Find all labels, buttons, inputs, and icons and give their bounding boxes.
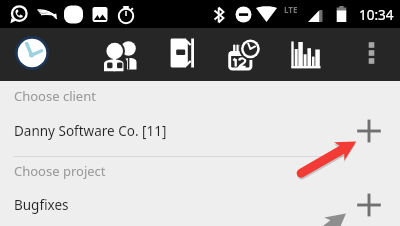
staticText: Bugfixes xyxy=(14,196,345,214)
button[interactable]: Timer xyxy=(11,32,53,74)
button[interactable]: Reports xyxy=(285,32,327,74)
button[interactable]: More options xyxy=(352,32,388,74)
staticText: Danny Software Co. [11] xyxy=(14,122,345,140)
button[interactable]: Bugfixes xyxy=(0,184,400,226)
button[interactable]: Add project xyxy=(345,184,393,226)
staticText: LTE xyxy=(284,4,298,15)
staticText: 10:34 xyxy=(359,6,394,24)
button[interactable]: Timesheet xyxy=(223,32,265,74)
button[interactable]: Add client xyxy=(345,109,393,153)
staticText: Choose client xyxy=(14,87,96,105)
button[interactable]: Projects xyxy=(163,32,205,74)
button[interactable]: Clients xyxy=(99,32,141,74)
button[interactable]: Danny Software Co. [11] xyxy=(0,109,400,153)
staticText: Choose project xyxy=(14,162,106,180)
